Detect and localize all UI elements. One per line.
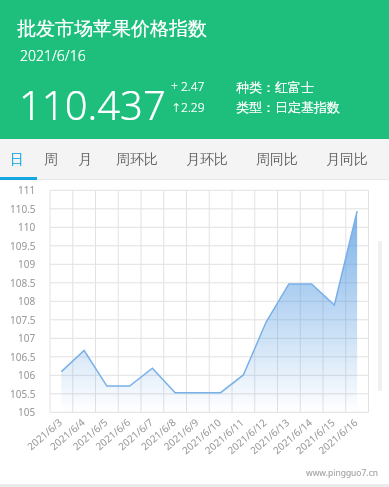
button[interactable]: 月同比 bbox=[312, 139, 382, 180]
button[interactable]: 月 bbox=[68, 139, 102, 180]
staticText: 类型：日定基指数 bbox=[236, 99, 340, 115]
staticText: 批发市场苹果价格指数 bbox=[17, 17, 207, 41]
staticText: 周环比 bbox=[116, 151, 158, 169]
button[interactable]: 周同比 bbox=[242, 139, 312, 180]
staticText: 周同比 bbox=[256, 151, 298, 169]
staticText: + 2.47 bbox=[171, 78, 205, 94]
staticText: 日 bbox=[10, 151, 24, 169]
staticText: 月环比 bbox=[186, 151, 228, 169]
staticText: ↑2.29 bbox=[171, 99, 205, 115]
staticText: www.pingguo7.cn bbox=[306, 467, 378, 479]
button[interactable]: 日 bbox=[0, 139, 34, 180]
button[interactable]: 月环比 bbox=[172, 139, 242, 180]
staticText: 110.437 bbox=[19, 77, 166, 131]
button[interactable]: 周 bbox=[34, 139, 68, 180]
button[interactable]: 周环比 bbox=[102, 139, 172, 180]
staticText: 种类：红富士 bbox=[236, 79, 314, 95]
staticText: 2021/6/16 bbox=[20, 46, 86, 65]
staticText: 月同比 bbox=[326, 151, 368, 169]
staticText: 月 bbox=[78, 151, 92, 169]
staticText: 周 bbox=[44, 151, 58, 169]
